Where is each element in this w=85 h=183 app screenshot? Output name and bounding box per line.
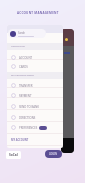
button[interactable]: DIRECTIONS <box>8 113 62 122</box>
staticText: PAYMENT <box>19 94 32 98</box>
button[interactable]: LOGIN <box>45 150 62 158</box>
staticText: PREFERENCES <box>19 126 38 130</box>
staticText: YOUR PLAN <box>11 44 25 47</box>
button[interactable]: CARDS <box>8 62 62 71</box>
staticText: SEND TO BANK <box>19 105 39 109</box>
staticText: DIRECTIONS <box>19 116 36 120</box>
button[interactable]: MY ACCOUNT <box>11 138 29 142</box>
staticText: Sarah <box>18 31 25 35</box>
button[interactable]: SEND TO BANK <box>8 102 62 111</box>
button[interactable]: ACCOUNT <box>8 53 62 62</box>
staticText: ACCOUNT MANAGEMENT <box>17 11 59 15</box>
button[interactable]: SoCal <box>6 151 21 159</box>
button[interactable]: TRANSFER <box>8 81 62 90</box>
staticText: ACCOUNT <box>19 56 33 60</box>
staticText: MY ACCOUNT <box>11 138 29 142</box>
staticText: LOGIN <box>49 152 58 156</box>
button[interactable]: Sarah <box>8 29 46 38</box>
staticText: CARDS <box>19 65 28 69</box>
button[interactable]: PAYMENT <box>8 91 62 100</box>
staticText: MY TRANSACTIONS <box>11 73 34 76</box>
button[interactable]: PREFERENCES <box>8 123 62 132</box>
staticText: SoCal <box>9 153 18 157</box>
staticText: TRANSFER <box>19 84 33 88</box>
